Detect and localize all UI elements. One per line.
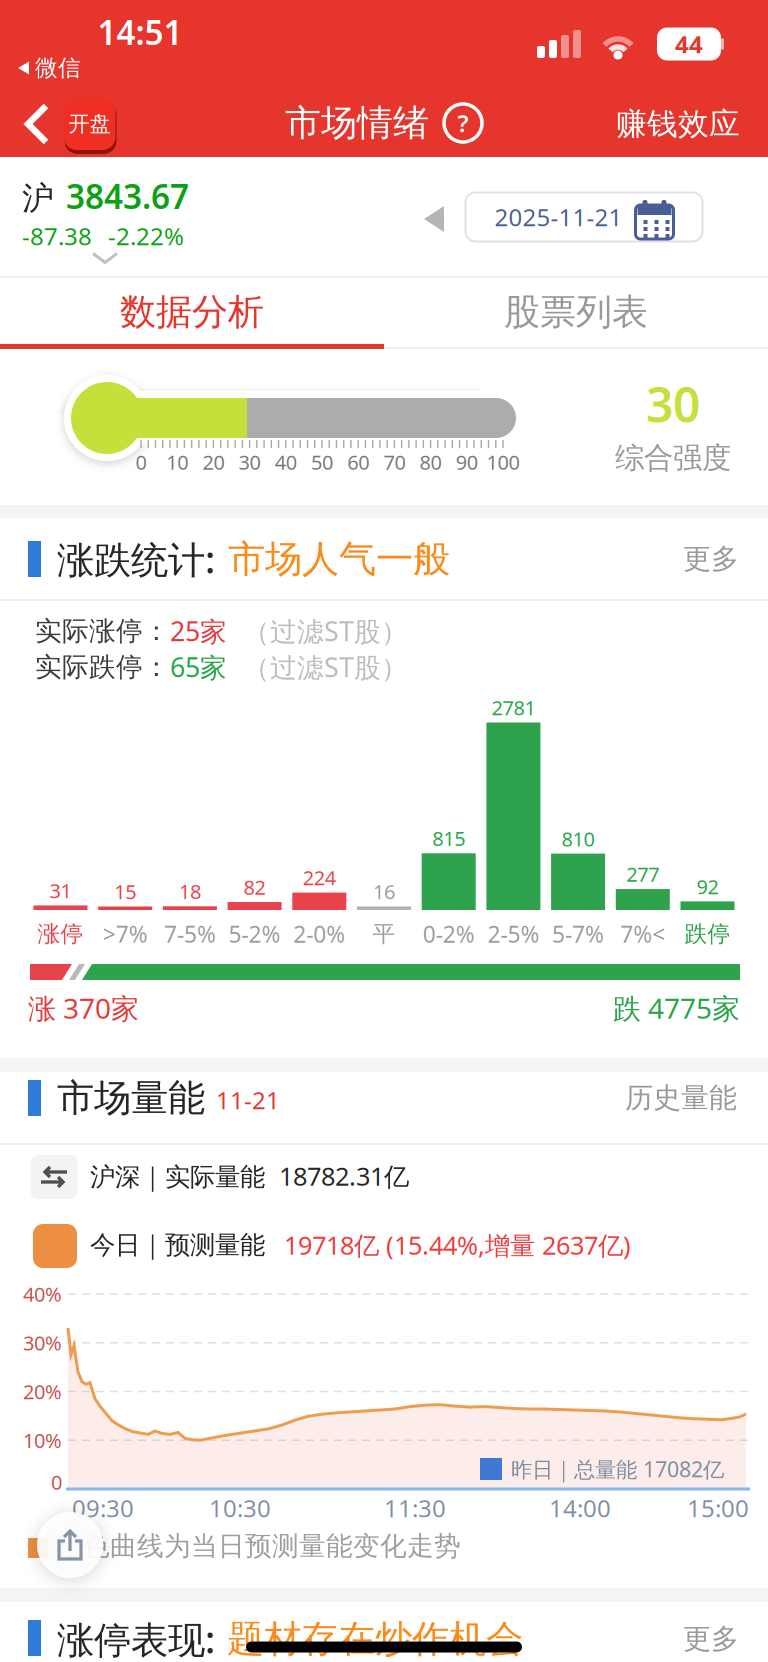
staticText: 跌停	[684, 920, 730, 948]
staticText: 3843.67	[66, 174, 189, 218]
staticText: >7%	[103, 919, 148, 949]
staticText: 20	[202, 449, 224, 475]
staticText: 赚钱效应	[616, 105, 740, 143]
staticText: 橙色曲线为当日预测量能变化走势	[56, 1530, 461, 1562]
staticText: 涨 370家	[28, 989, 139, 1027]
staticText: 今日｜预测量能	[90, 1229, 265, 1260]
button[interactable]: 更多	[683, 1622, 739, 1656]
staticText: 综合强度	[615, 440, 731, 476]
staticText: 7%<	[620, 919, 665, 949]
staticText: 810	[562, 825, 595, 852]
staticText: 44	[675, 28, 703, 60]
staticText: 市场人气一般	[228, 536, 450, 582]
button[interactable]: 2025-11-21	[465, 192, 702, 241]
staticText: 09:30	[72, 1492, 134, 1524]
button[interactable]: 涨停表现:	[57, 1614, 523, 1662]
staticText: 0	[51, 1469, 62, 1495]
staticText: （过滤ST股）	[227, 649, 408, 685]
button[interactable]: ?	[443, 103, 483, 143]
staticText: 11-21	[216, 1084, 280, 1116]
staticText: 5-7%	[552, 919, 604, 949]
staticText: 5-2%	[229, 919, 281, 949]
staticText: 11:30	[384, 1492, 446, 1524]
staticText: 2-5%	[487, 919, 539, 949]
staticText: 0	[135, 449, 146, 475]
staticText: 60	[347, 449, 369, 475]
staticText: 7-5%	[164, 919, 216, 949]
staticText: 100	[486, 449, 519, 475]
staticText: 2-0%	[293, 919, 345, 949]
staticText: 开盘	[68, 111, 110, 137]
staticText: 数据分析	[120, 290, 264, 334]
staticText: 65家	[170, 649, 227, 685]
staticText: 涨停表现:	[57, 1614, 215, 1662]
staticText: ?	[457, 107, 468, 139]
staticText: 历史量能	[625, 1081, 737, 1115]
staticText: 20%	[23, 1378, 62, 1405]
button[interactable]: 赚钱效应	[616, 105, 740, 143]
staticText: 2781	[491, 694, 535, 721]
staticText: 10%	[23, 1427, 62, 1454]
staticText: -87.38	[22, 220, 92, 252]
staticText: 92	[696, 873, 718, 900]
staticText: 815	[432, 825, 465, 852]
staticText: 18	[179, 878, 201, 905]
staticText: 涨停	[37, 920, 83, 948]
staticText: 31	[49, 877, 71, 904]
staticText: 实际涨停：	[35, 615, 170, 647]
staticText: 2025-11-21	[494, 201, 622, 233]
button[interactable]: 更多	[683, 542, 739, 576]
staticText: 15:00	[687, 1492, 749, 1524]
staticText: 14:00	[549, 1492, 611, 1524]
staticText: 平	[372, 920, 395, 948]
staticText: 25家	[170, 613, 227, 649]
staticText: 80	[420, 449, 442, 475]
staticText: -2.22%	[108, 220, 184, 252]
staticText: 10	[166, 449, 188, 475]
staticText: 30	[239, 449, 261, 475]
staticText: 涨跌统计:	[57, 534, 215, 584]
staticText: 14:51	[97, 10, 182, 54]
staticText: 277	[626, 861, 659, 887]
staticText: 跌 4775家	[613, 989, 740, 1027]
button[interactable]: 开盘	[25, 96, 117, 151]
button[interactable]: 历史量能	[625, 1081, 737, 1115]
button[interactable]: 股票列表	[384, 280, 768, 344]
staticText: 15	[114, 878, 136, 905]
staticText: 30	[646, 372, 700, 436]
staticText: 市场量能	[57, 1075, 205, 1121]
staticText: 题材存在炒作机会	[227, 1616, 523, 1662]
staticText: 224	[303, 864, 336, 891]
button[interactable]	[246, 1641, 522, 1652]
staticText: 微信	[35, 54, 81, 82]
staticText: 82	[244, 874, 266, 900]
staticText: 30%	[23, 1329, 62, 1356]
button[interactable]: 数据分析	[0, 280, 384, 344]
staticText: 0-2%	[423, 919, 475, 949]
staticText: 70	[383, 449, 405, 475]
staticText: 50	[311, 449, 333, 475]
staticText: 昨日｜总量能 17082亿	[511, 1455, 724, 1483]
staticText: 股票列表	[504, 290, 648, 334]
staticText: 更多	[683, 542, 739, 576]
staticText: 10:30	[209, 1492, 271, 1524]
staticText: 沪	[22, 179, 54, 218]
button[interactable]	[37, 1512, 103, 1578]
staticText: （过滤ST股）	[227, 613, 408, 649]
staticText: 沪深｜实际量能 18782.31亿	[90, 1159, 409, 1193]
staticText: 实际跌停：	[35, 651, 170, 683]
staticText: 40	[275, 449, 297, 475]
staticText: 市场情绪	[285, 101, 429, 145]
staticText: 16	[373, 878, 395, 905]
staticText: 更多	[683, 1622, 739, 1656]
staticText: 40%	[23, 1281, 62, 1307]
staticText: 90	[456, 449, 478, 475]
staticText: 19718亿 (15.44%,增量 2637亿)	[284, 1228, 631, 1262]
button[interactable]	[424, 206, 444, 232]
